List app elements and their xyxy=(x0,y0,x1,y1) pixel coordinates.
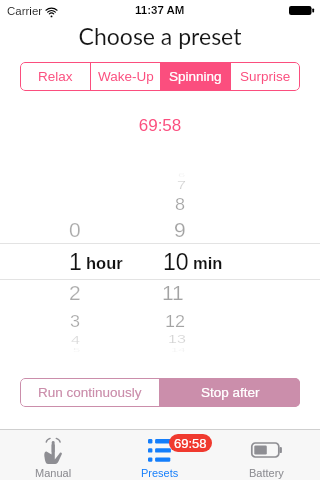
button[interactable]: Manual xyxy=(0,430,106,480)
button[interactable]: Surprise xyxy=(231,62,300,91)
staticText: Battery xyxy=(249,467,284,479)
staticText: Carrier xyxy=(7,5,43,18)
other: Battery xyxy=(251,436,282,464)
staticText: 2 xyxy=(69,281,81,304)
staticText: Relax xyxy=(38,69,73,84)
staticText: 10 xyxy=(163,249,189,275)
staticText: hour xyxy=(86,254,123,272)
staticText: 4 xyxy=(71,335,80,347)
button[interactable]: Run continuously xyxy=(20,378,159,407)
staticText: min xyxy=(193,254,223,272)
staticText: 11:37 AM xyxy=(135,4,185,17)
staticText: 5 xyxy=(73,348,81,353)
staticText: 12 xyxy=(165,313,186,331)
staticText: 9 xyxy=(174,218,186,241)
other: Manual xyxy=(44,436,62,464)
staticText: Wake-Up xyxy=(98,69,154,84)
staticText: Manual xyxy=(35,467,72,479)
staticText: 3 xyxy=(70,313,81,331)
staticText: 69:58 xyxy=(0,116,320,135)
staticText: Spinning xyxy=(169,69,222,84)
staticText: 8 xyxy=(175,196,186,214)
button[interactable]: Presets xyxy=(106,430,213,480)
staticText: 7 xyxy=(177,180,186,192)
button[interactable]: Wake-Up xyxy=(91,62,160,91)
other: Presets xyxy=(148,439,171,462)
staticText: Presets xyxy=(141,467,179,479)
staticText: 6 xyxy=(178,173,186,178)
staticText: Stop after xyxy=(201,385,260,400)
button[interactable]: Relax xyxy=(20,62,90,91)
staticText: Surprise xyxy=(240,69,291,84)
staticText: 11 xyxy=(162,281,184,304)
staticText: 69:58 xyxy=(174,436,207,451)
button[interactable]: Spinning xyxy=(161,62,230,91)
button[interactable]: Stop after xyxy=(160,378,300,407)
staticText: 0 xyxy=(69,218,81,241)
staticText: Choose a preset xyxy=(0,22,320,50)
staticText: 14 xyxy=(171,348,186,353)
staticText: 1 xyxy=(69,249,82,275)
button[interactable]: Battery xyxy=(213,430,320,480)
staticText: Run continuously xyxy=(38,385,142,400)
staticText: 13 xyxy=(168,334,186,346)
